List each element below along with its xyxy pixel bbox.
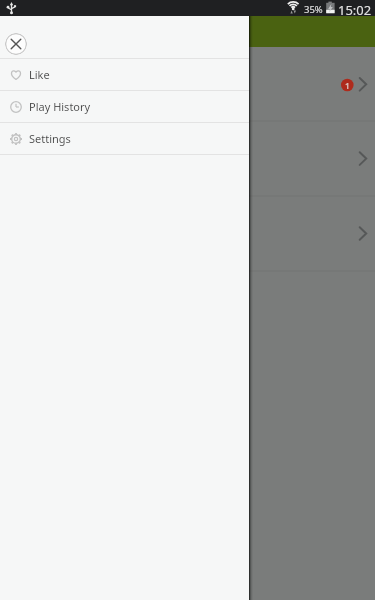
button[interactable]: Settings — [0, 123, 249, 154]
button[interactable] — [249, 16, 375, 600]
staticText: 35% — [304, 3, 323, 16]
button[interactable] — [0, 121, 375, 196]
button[interactable] — [0, 196, 375, 271]
staticText: Like — [29, 67, 50, 82]
staticText: Play History — [29, 99, 91, 114]
staticText: Settings — [29, 131, 71, 146]
button[interactable] — [5, 33, 27, 55]
button[interactable]: Play History — [0, 91, 249, 122]
button[interactable] — [0, 47, 375, 121]
staticText: 1 — [345, 80, 350, 91]
button[interactable]: Like — [0, 59, 249, 90]
staticText: 15:02 — [338, 1, 372, 19]
